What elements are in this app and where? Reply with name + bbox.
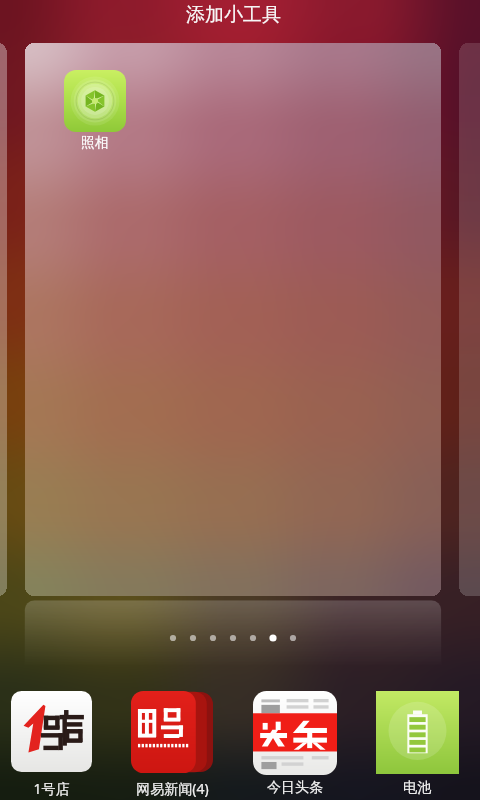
staticText: 照相 [81, 134, 109, 152]
button[interactable]: 电池 [357, 686, 477, 800]
button[interactable]: 1号店 [0, 686, 111, 800]
other: Page indicator [0, 0, 480, 800]
staticText: 添加小工具 [186, 3, 281, 27]
staticText: 1号店 [33, 779, 70, 798]
staticText: 电池 [403, 779, 431, 797]
button[interactable]: 网易新闻(4) [112, 686, 232, 800]
staticText: 今日头条 [267, 779, 323, 797]
button[interactable]: 今日头条 [235, 686, 355, 800]
button[interactable]: 照相 [64, 70, 126, 154]
staticText: 网易新闻(4) [136, 779, 209, 798]
